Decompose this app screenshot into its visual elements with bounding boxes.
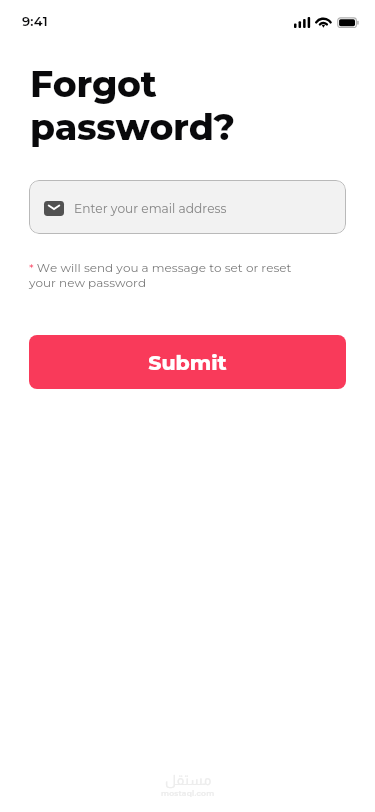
staticText: Forgot password?	[30, 62, 235, 149]
staticText: مستقل	[165, 772, 212, 788]
staticText: * We will send you a message to set or r…	[29, 260, 346, 290]
button[interactable]: Submit	[29, 335, 346, 389]
staticText: Submit	[148, 350, 227, 375]
staticText: mostaql.com	[161, 789, 215, 798]
staticText: Enter your email address	[74, 201, 227, 216]
button[interactable]: Enter your email address	[29, 180, 346, 234]
staticText: 9:41	[22, 13, 48, 29]
